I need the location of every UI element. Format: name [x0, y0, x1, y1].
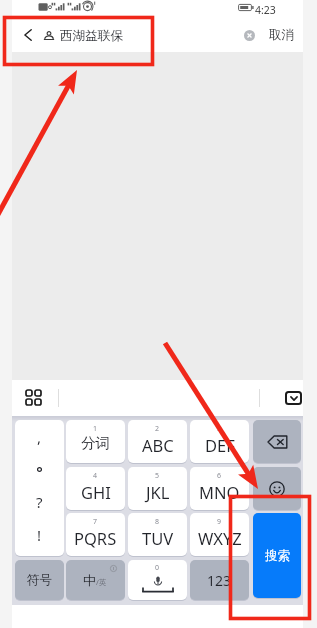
button[interactable]: 符号: [15, 560, 64, 600]
button[interactable]: 3: [190, 420, 249, 463]
staticText: 123: [207, 571, 232, 590]
staticText: !: [37, 525, 42, 545]
button[interactable]: Clear text: [234, 18, 264, 52]
button[interactable]: 0: [128, 560, 187, 600]
staticText: 取消: [269, 27, 295, 43]
staticText: TUV: [142, 527, 174, 549]
staticText: 4:23: [255, 3, 276, 17]
button[interactable]: [253, 467, 301, 510]
staticText: 2: [155, 424, 160, 434]
button[interactable]: 中: [66, 560, 125, 600]
staticText: 5: [155, 471, 160, 481]
staticText: JKL: [146, 481, 170, 503]
button[interactable]: 搜索: [253, 513, 301, 598]
staticText: 西湖益联保: [60, 28, 123, 44]
button[interactable]: Keyboard panels: [16, 380, 51, 415]
staticText: /英: [96, 577, 107, 587]
staticText: ?: [36, 492, 43, 512]
staticText: ,: [37, 427, 42, 447]
staticText: 7: [93, 517, 98, 527]
button[interactable]: 5: [128, 467, 187, 510]
button[interactable]: ,: [15, 420, 64, 556]
staticText: 8: [155, 517, 160, 527]
button[interactable]: 1: [66, 420, 125, 463]
staticText: GHI: [81, 481, 111, 503]
staticText: 3: [217, 424, 222, 434]
staticText: 1: [93, 424, 98, 434]
staticText: ABC: [142, 434, 174, 456]
staticText: WXYZ: [198, 527, 242, 549]
staticText: 搜索: [265, 548, 290, 564]
button[interactable]: 取消: [262, 18, 302, 52]
staticText: PQRS: [74, 527, 117, 549]
button[interactable]: Back: [13, 18, 43, 52]
staticText: 6: [217, 471, 222, 481]
staticText: 9: [217, 517, 222, 527]
button[interactable]: 123: [190, 560, 249, 600]
staticText: 4: [93, 471, 98, 481]
button[interactable]: 2: [128, 420, 187, 463]
staticText: 0: [155, 563, 160, 573]
staticText: 分词: [81, 434, 110, 452]
button[interactable]: 4: [66, 467, 125, 510]
staticText: MNO: [199, 481, 240, 503]
button[interactable]: Hide keyboard: [276, 380, 311, 415]
staticText: DEF: [205, 434, 235, 456]
button[interactable]: 9: [190, 513, 249, 556]
staticText: 符号: [27, 572, 52, 588]
button[interactable]: 8: [128, 513, 187, 556]
button[interactable]: 6: [190, 467, 249, 510]
button[interactable]: 7: [66, 513, 125, 556]
staticText: 中: [83, 572, 96, 588]
button[interactable]: [253, 420, 301, 463]
